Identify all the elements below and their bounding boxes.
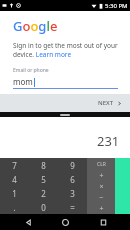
button[interactable]: .	[0, 200, 29, 214]
button[interactable]: 2	[29, 186, 58, 200]
staticText: 1	[12, 188, 17, 199]
button[interactable]: 9	[58, 158, 87, 172]
staticText: 6	[70, 174, 75, 185]
staticText: 5:30 PM	[105, 2, 128, 10]
staticText: NEXT	[98, 99, 114, 107]
staticText: 5	[41, 174, 46, 185]
button[interactable]: −	[87, 192, 115, 203]
staticText: =	[70, 202, 75, 213]
staticText: Google	[13, 17, 58, 35]
staticText: 231	[97, 132, 120, 150]
button[interactable]: Sign in to get the most out of your devi…	[13, 41, 120, 59]
staticText: mom	[13, 76, 33, 87]
button[interactable]: +	[87, 203, 115, 214]
button[interactable]: =	[58, 200, 87, 214]
staticText: 7	[12, 160, 17, 171]
button[interactable]: 6	[58, 172, 87, 186]
button[interactable]: Recents	[93, 214, 113, 230]
button[interactable]: CLR	[87, 158, 115, 170]
button[interactable]: 5	[29, 172, 58, 186]
button[interactable]: +	[87, 170, 115, 181]
staticText: .	[13, 202, 16, 213]
staticText: ×	[99, 182, 104, 192]
button[interactable]: 8	[29, 158, 58, 172]
button[interactable]: 0	[29, 200, 58, 214]
staticText: 8	[41, 160, 46, 171]
staticText: 0	[41, 202, 46, 213]
button[interactable]: 4	[0, 172, 29, 186]
button[interactable]: 1	[0, 186, 29, 200]
button[interactable]: Back	[18, 214, 38, 230]
button[interactable]: Home	[55, 214, 75, 230]
button[interactable]: ×	[87, 181, 115, 192]
staticText: 4	[12, 174, 17, 185]
staticText: 9	[70, 160, 75, 171]
staticText: Email or phone	[13, 67, 49, 74]
staticText: +	[99, 171, 104, 181]
button[interactable]: 7	[0, 158, 29, 172]
staticText: 2	[41, 188, 46, 199]
staticText: −	[99, 193, 104, 203]
staticText: CLR	[97, 161, 106, 168]
button[interactable]: 3	[58, 186, 87, 200]
staticText: +	[99, 204, 104, 214]
button[interactable]: mom	[13, 76, 118, 87]
button[interactable]: NEXT	[90, 95, 130, 111]
staticText: 3	[70, 188, 75, 199]
